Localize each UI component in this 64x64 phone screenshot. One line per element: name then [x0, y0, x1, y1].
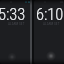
staticText: ALARM SET — [43, 22, 60, 26]
staticText: 5:33 — [0, 5, 26, 24]
button[interactable]: 5:33 — [0, 0, 30, 64]
staticText: ALARM SET — [8, 22, 25, 26]
button[interactable]: 6:10 — [34, 0, 64, 64]
staticText: 6:10 — [36, 5, 64, 24]
